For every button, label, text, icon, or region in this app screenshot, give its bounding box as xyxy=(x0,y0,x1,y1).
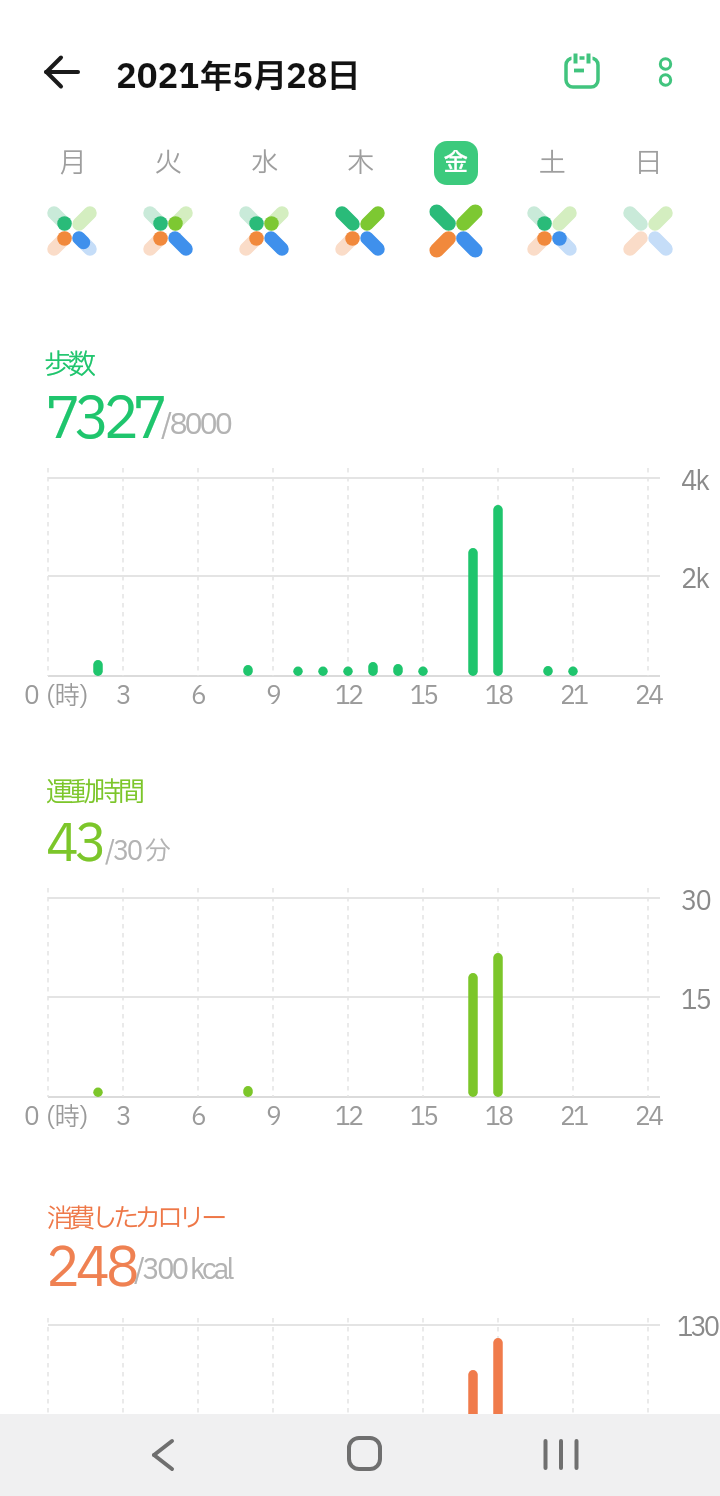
button[interactable]: 土 xyxy=(504,138,600,188)
staticText: 24 xyxy=(635,1099,662,1136)
staticText: 金 xyxy=(444,145,468,181)
button[interactable] xyxy=(552,44,610,100)
staticText: 12 xyxy=(335,1099,362,1136)
staticText: 12 xyxy=(335,678,362,715)
button[interactable]: 日 xyxy=(600,138,696,188)
staticText: 30 xyxy=(681,882,710,921)
staticText: /300 kcal xyxy=(134,1249,232,1291)
staticText: 歩数 xyxy=(44,344,93,386)
staticText: 2021年5月28日 xyxy=(116,53,361,102)
button[interactable]: 水 xyxy=(216,138,312,188)
button[interactable] xyxy=(34,50,90,94)
button[interactable]: 月 xyxy=(24,138,120,188)
staticText: 18 xyxy=(485,678,512,715)
staticText: 130 xyxy=(677,1308,718,1347)
staticText: 0 (時) xyxy=(24,1099,89,1136)
staticText: 9 xyxy=(266,678,280,715)
button[interactable] xyxy=(480,1414,720,1496)
button[interactable]: 木 xyxy=(312,138,408,188)
staticText: 21 xyxy=(560,1099,587,1136)
button[interactable] xyxy=(240,1414,480,1496)
staticText: 24 xyxy=(635,678,662,715)
staticText: 4k xyxy=(681,462,708,501)
staticText: 木 xyxy=(347,143,374,183)
staticText: 15 xyxy=(681,981,710,1020)
staticText: 21 xyxy=(560,678,587,715)
staticText: /30 分 xyxy=(105,832,169,871)
staticText: 消費したカロリー xyxy=(47,1199,224,1238)
staticText: 月 xyxy=(59,143,86,183)
button[interactable] xyxy=(0,1414,240,1496)
staticText: 6 xyxy=(191,678,205,715)
staticText: 6 xyxy=(191,1099,205,1136)
staticText: 日 xyxy=(635,143,662,183)
staticText: 15 xyxy=(410,1099,437,1136)
staticText: 18 xyxy=(485,1099,512,1136)
button[interactable]: 金 xyxy=(434,141,478,185)
staticText: 3 xyxy=(116,678,130,715)
staticText: 15 xyxy=(410,678,437,715)
staticText: 0 (時) xyxy=(24,678,89,715)
staticText: 9 xyxy=(266,1099,280,1136)
staticText: /8000 xyxy=(161,403,230,446)
staticText: 7327 xyxy=(45,378,162,463)
button[interactable] xyxy=(644,44,688,100)
staticText: 43 xyxy=(46,806,104,884)
staticText: 3 xyxy=(116,1099,130,1136)
staticText: 火 xyxy=(155,143,182,183)
staticText: 土 xyxy=(539,143,566,183)
staticText: 248 xyxy=(46,1229,136,1310)
staticText: 運動時間 xyxy=(46,772,142,812)
staticText: 2k xyxy=(681,560,708,599)
staticText: 水 xyxy=(251,143,278,183)
button[interactable]: 火 xyxy=(120,138,216,188)
